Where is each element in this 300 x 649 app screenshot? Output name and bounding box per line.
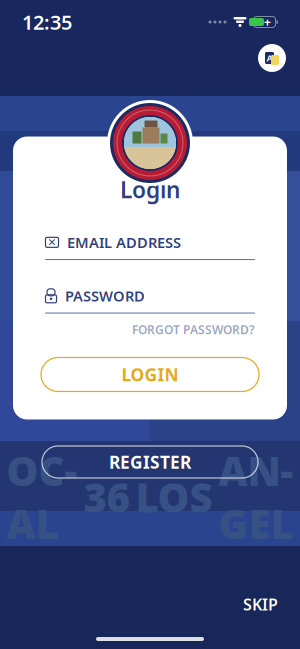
staticText: SKIP bbox=[243, 594, 278, 615]
staticText: Login bbox=[120, 174, 180, 205]
staticText: ANGEL bbox=[218, 444, 293, 550]
staticText: A bbox=[266, 52, 272, 64]
button[interactable]: SKIP bbox=[243, 594, 278, 615]
staticText: LOS bbox=[135, 470, 212, 523]
staticText: 12:35 bbox=[22, 9, 72, 35]
staticText: REGISTER bbox=[109, 450, 191, 473]
staticText: EMAIL ADDRESS bbox=[67, 233, 181, 252]
staticText: 36 bbox=[83, 470, 129, 523]
staticText: ✕ bbox=[47, 236, 56, 248]
button[interactable]: Change language bbox=[258, 44, 286, 72]
button[interactable]: REGISTER bbox=[42, 446, 258, 478]
staticText: PASSWORD bbox=[65, 286, 145, 306]
staticText: OCAL bbox=[6, 444, 77, 550]
staticText: + bbox=[264, 14, 271, 30]
button[interactable]: LOGIN bbox=[41, 357, 259, 391]
button[interactable]: FORGOT PASSWORD? bbox=[132, 322, 255, 337]
staticText: LOGIN bbox=[121, 363, 178, 386]
staticText: FORGOT PASSWORD? bbox=[132, 322, 255, 337]
